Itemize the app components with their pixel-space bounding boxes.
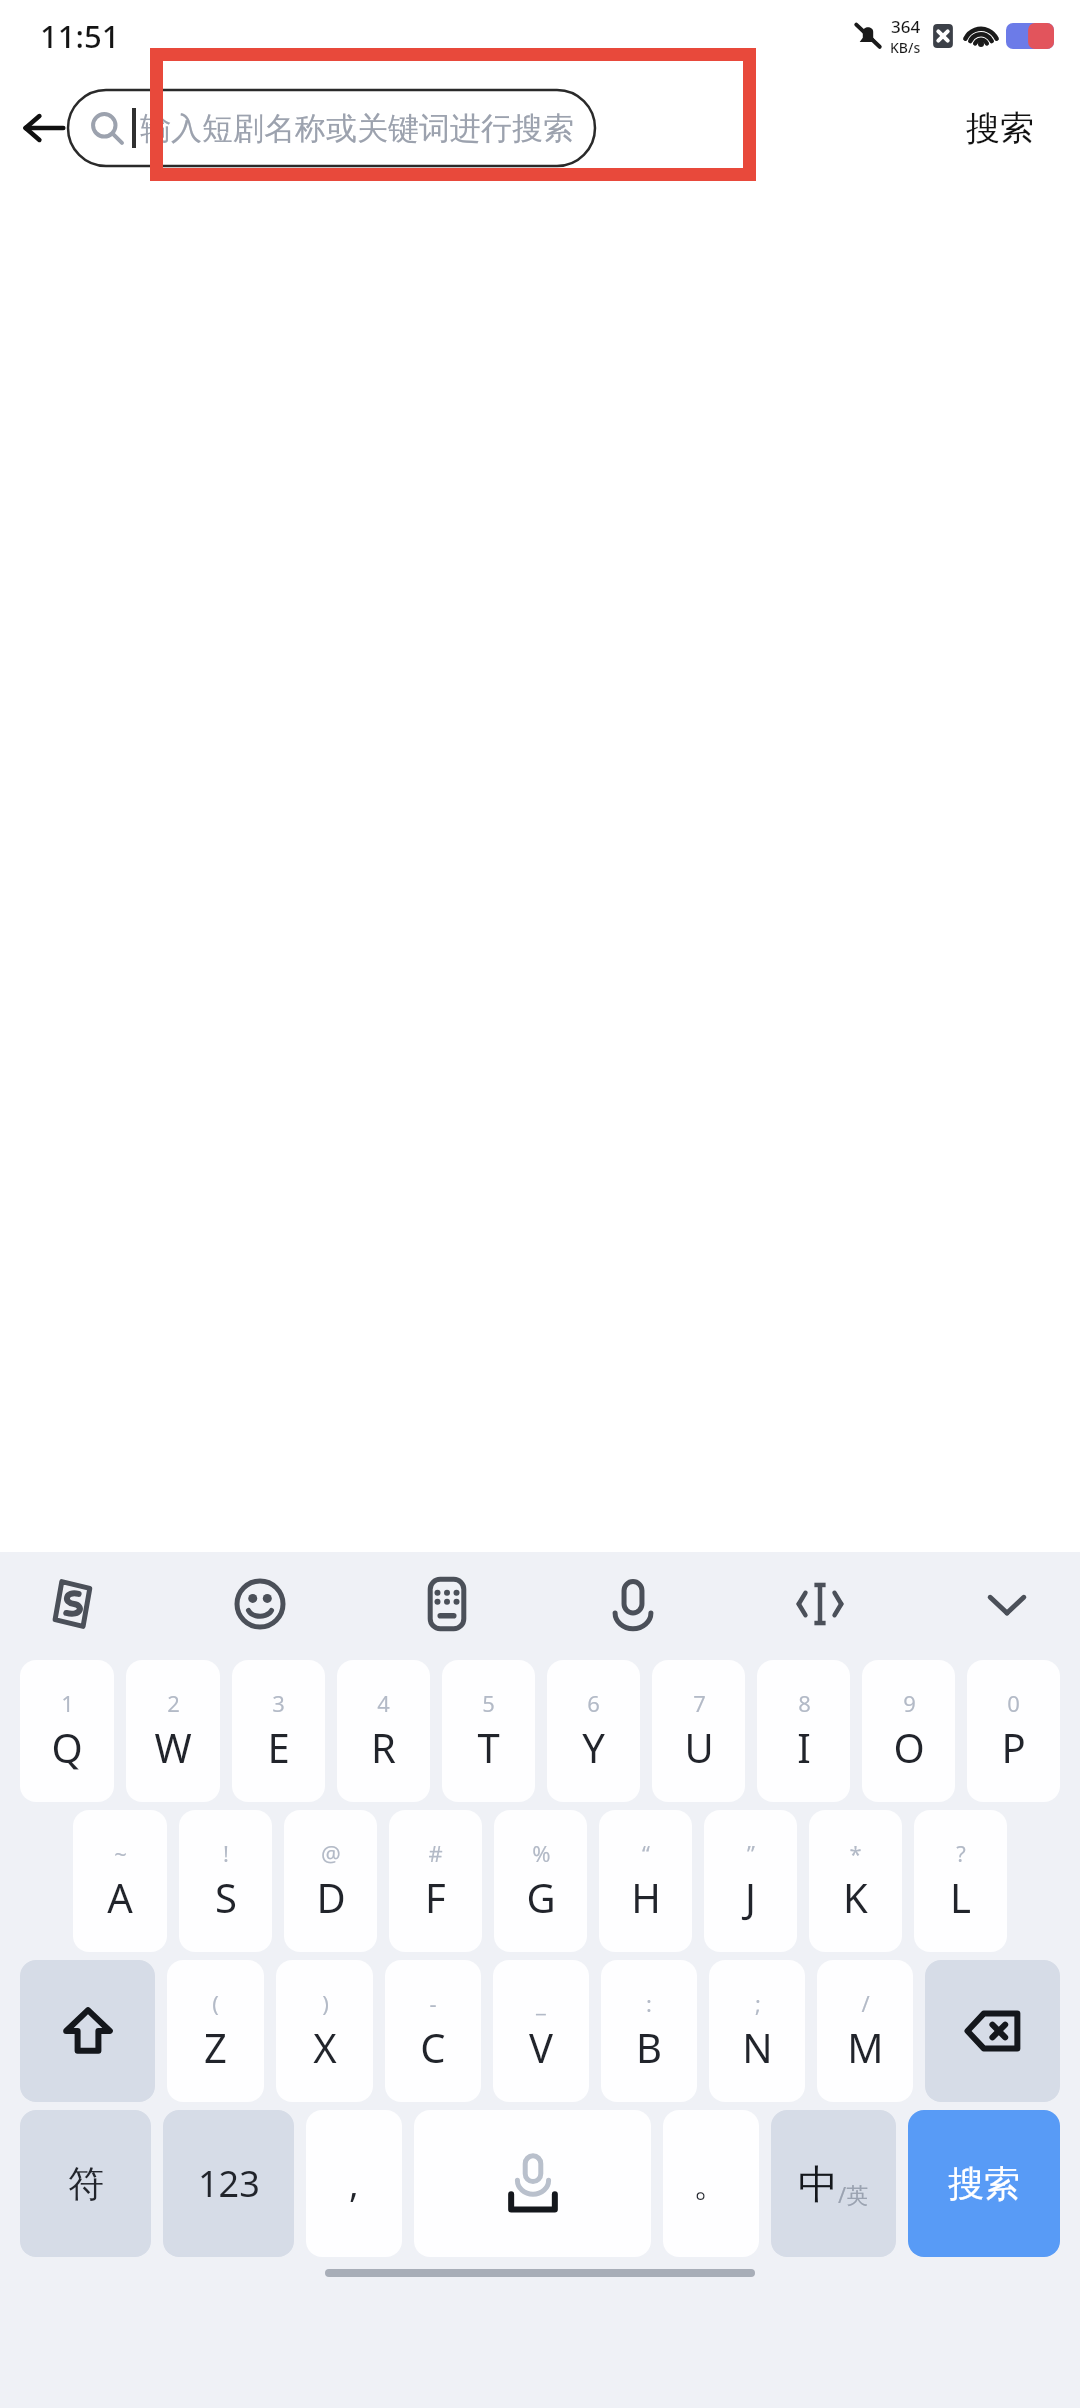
button[interactable]: 1	[20, 1660, 114, 1802]
staticText: ?	[956, 1838, 966, 1868]
staticText: Z	[204, 2020, 227, 2074]
staticText: N	[742, 2020, 773, 2074]
staticText: 输入短剧名称或关键词进行搜索	[140, 109, 574, 148]
button[interactable]: @	[284, 1810, 377, 1952]
staticText: Q	[51, 1720, 83, 1774]
button[interactable]: 0	[967, 1660, 1060, 1802]
staticText: S	[215, 1870, 237, 1924]
staticText: /英	[838, 2179, 869, 2209]
staticText: /	[861, 1988, 870, 2018]
button[interactable]: ~	[73, 1810, 167, 1952]
button[interactable]: 9	[862, 1660, 955, 1802]
staticText: 5	[482, 1688, 495, 1718]
button[interactable]: Voice input	[590, 1561, 676, 1647]
staticText: J	[745, 1870, 756, 1924]
staticText: ,	[349, 2159, 359, 2208]
staticText: 4	[377, 1688, 390, 1718]
staticText: :	[646, 1988, 652, 2018]
button[interactable]: 中	[771, 2110, 896, 2257]
button[interactable]: (	[167, 1960, 264, 2102]
button[interactable]: :	[601, 1960, 697, 2102]
staticText: C	[420, 2020, 446, 2074]
button[interactable]: )	[276, 1960, 373, 2102]
button[interactable]: Sogou logo	[30, 1561, 116, 1647]
button[interactable]: Backspace	[925, 1960, 1060, 2102]
button[interactable]: *	[809, 1810, 902, 1952]
staticText: ;	[755, 1988, 761, 2018]
staticText: “	[642, 1838, 650, 1868]
button[interactable]: Keyboard layout	[404, 1561, 490, 1647]
button[interactable]: Hide keyboard	[964, 1561, 1050, 1647]
staticText: ”	[747, 1838, 755, 1868]
staticText: 搜索	[948, 2161, 1020, 2206]
button[interactable]: ,	[306, 2110, 402, 2257]
staticText: V	[529, 2020, 553, 2074]
staticText: 364	[891, 15, 921, 38]
staticText: 7	[693, 1688, 706, 1718]
staticText: 8	[798, 1688, 811, 1718]
staticText: *	[849, 1838, 862, 1868]
button[interactable]: “	[599, 1810, 692, 1952]
button[interactable]: 搜索	[908, 2110, 1060, 2257]
button[interactable]: Space	[414, 2110, 651, 2257]
button[interactable]: 3	[232, 1660, 325, 1802]
staticText: _	[536, 1988, 546, 2018]
button[interactable]: Back	[8, 92, 80, 164]
button[interactable]: 5	[442, 1660, 535, 1802]
staticText: A	[107, 1870, 133, 1924]
button[interactable]: /	[817, 1960, 913, 2102]
button[interactable]: #	[389, 1810, 482, 1952]
staticText: 。	[693, 2161, 729, 2206]
staticText: 11:51	[40, 15, 120, 57]
staticText: M	[847, 2020, 884, 2074]
button[interactable]: ”	[704, 1810, 797, 1952]
button[interactable]: -	[385, 1960, 481, 2102]
button[interactable]: !	[179, 1810, 272, 1952]
staticText: 9	[903, 1688, 916, 1718]
staticText: ~	[114, 1838, 127, 1868]
staticText: 123	[198, 2159, 260, 2208]
staticText: #	[428, 1838, 443, 1868]
button[interactable]: Emoji	[217, 1561, 303, 1647]
button[interactable]: 输入短剧名称或关键词进行搜索	[68, 90, 595, 166]
staticText: 搜索	[966, 107, 1034, 150]
staticText: Y	[582, 1720, 605, 1774]
staticText: D	[316, 1870, 346, 1924]
staticText: E	[267, 1720, 290, 1774]
staticText: !	[223, 1838, 229, 1868]
button[interactable]: %	[494, 1810, 587, 1952]
staticText: F	[425, 1870, 446, 1924]
staticText: B	[636, 2020, 662, 2074]
button[interactable]: 6	[547, 1660, 640, 1802]
staticText: 0	[1007, 1688, 1020, 1718]
staticText: (	[212, 1988, 219, 2018]
button[interactable]: ;	[709, 1960, 805, 2102]
button[interactable]: _	[493, 1960, 589, 2102]
staticText: W	[154, 1720, 192, 1774]
button[interactable]: 123	[163, 2110, 294, 2257]
staticText: 中	[798, 2159, 838, 2209]
staticText: R	[371, 1720, 396, 1774]
button[interactable]: 搜索	[940, 88, 1060, 168]
staticText: 6	[587, 1688, 600, 1718]
button[interactable]: Shift	[20, 1960, 155, 2102]
button[interactable]: 。	[663, 2110, 759, 2257]
button[interactable]: 2	[126, 1660, 220, 1802]
staticText: K	[843, 1870, 868, 1924]
staticText: @	[321, 1838, 341, 1868]
button[interactable]: ?	[914, 1810, 1007, 1952]
button[interactable]: 符	[20, 2110, 151, 2257]
staticText: O	[893, 1720, 925, 1774]
staticText: L	[950, 1870, 971, 1924]
button[interactable]: 8	[757, 1660, 850, 1802]
staticText: G	[526, 1870, 556, 1924]
staticText: I	[797, 1720, 811, 1774]
button[interactable]: 7	[652, 1660, 745, 1802]
staticText: P	[1001, 1720, 1026, 1774]
button[interactable]: Move cursor	[777, 1561, 863, 1647]
button[interactable]: 4	[337, 1660, 430, 1802]
staticText: 符	[68, 2161, 104, 2206]
staticText: KB/s	[890, 38, 921, 57]
staticText: 1	[61, 1688, 74, 1718]
staticText: U	[684, 1720, 714, 1774]
